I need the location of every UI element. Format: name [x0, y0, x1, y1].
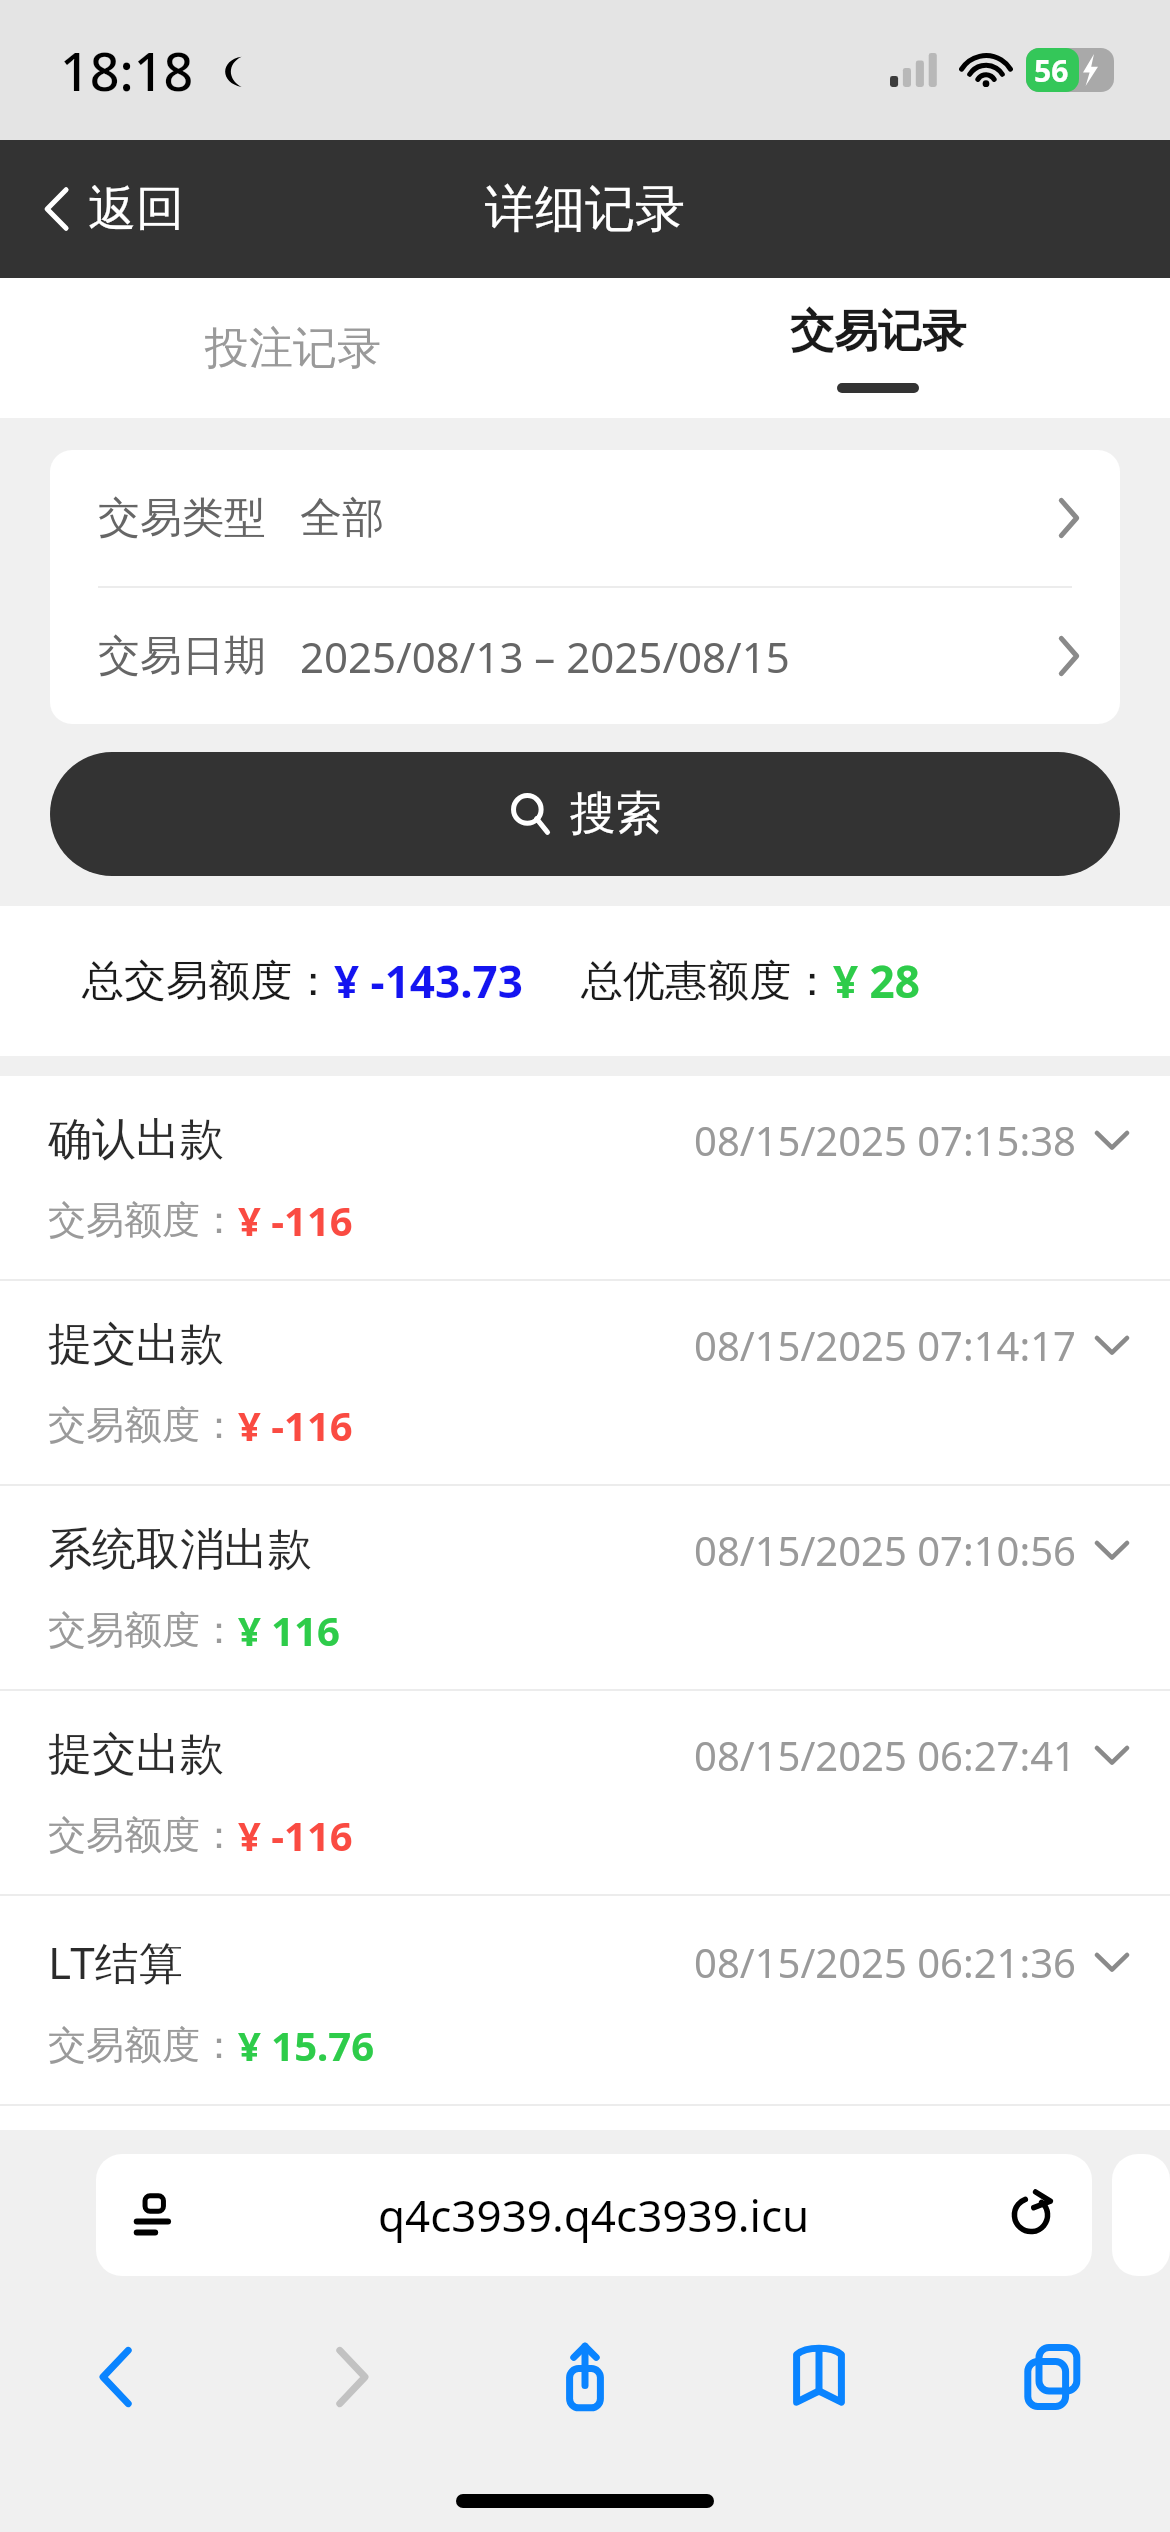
staticText: q4c3939.q4c3939.icu — [378, 2185, 810, 2245]
staticText: 08/15/2025 07:14:17 — [694, 1318, 1076, 1372]
button[interactable]: 系统取消出款 — [0, 1486, 1170, 1691]
button[interactable]: Back — [0, 2322, 234, 2432]
staticText: 2025/08/13 – 2025/08/15 — [300, 628, 790, 685]
staticText: ¥ -116 — [238, 1808, 353, 1862]
button[interactable]: 交易类型 — [50, 450, 1120, 586]
button[interactable]: Forward — [234, 2322, 468, 2432]
button[interactable]: 交易日期 — [50, 588, 1120, 724]
staticText: 返回 — [88, 179, 184, 239]
button[interactable]: Page settings — [96, 2154, 1092, 2276]
button[interactable]: Share — [468, 2322, 702, 2432]
staticText: 交易额度： — [48, 1196, 238, 1244]
staticText: ¥ 116 — [238, 1603, 340, 1657]
staticText: ¥ -116 — [238, 1193, 353, 1247]
button[interactable]: Tabs — [936, 2322, 1170, 2432]
other: Page settings — [134, 2192, 180, 2238]
staticText: 08/15/2025 07:10:56 — [694, 1523, 1076, 1577]
staticText: 提交出款 — [48, 1317, 224, 1372]
staticText: 详细记录 — [485, 178, 685, 241]
staticText: 交易额度： — [48, 1811, 238, 1859]
staticText: 搜索 — [570, 785, 662, 843]
button[interactable]: 提交出款 — [0, 1281, 1170, 1486]
button[interactable]: 投注记录 — [0, 278, 585, 418]
staticText: 交易记录 — [790, 304, 966, 359]
button[interactable]: 提交出款 — [0, 1691, 1170, 1896]
staticText: LT结算 — [48, 1932, 183, 1992]
staticText: 总交易额度： — [82, 955, 334, 1008]
staticText: 确认出款 — [48, 1112, 224, 1167]
staticText: 交易类型 — [98, 492, 266, 545]
staticText: ¥ -143.73 — [334, 951, 523, 1011]
staticText: 08/15/2025 07:15:38 — [694, 1113, 1076, 1167]
staticText: ¥ -116 — [238, 1398, 353, 1452]
staticText: ¥ 15.76 — [238, 2018, 375, 2072]
button[interactable]: 交易记录 — [585, 278, 1170, 418]
staticText: 投注记录 — [205, 321, 381, 376]
button[interactable]: LT结算 — [0, 1896, 1170, 2106]
button[interactable]: 返回 — [0, 159, 214, 259]
button[interactable]: 确认出款 — [0, 1076, 1170, 1281]
other: Reload — [1008, 2192, 1054, 2238]
staticText: 交易额度： — [48, 1401, 238, 1449]
staticText: 08/15/2025 06:27:41 — [694, 1728, 1076, 1782]
staticText: 交易额度： — [48, 2021, 238, 2069]
staticText: 08/15/2025 06:21:36 — [694, 1935, 1076, 1989]
button[interactable]: 搜索 — [50, 752, 1120, 876]
staticText: 交易额度： — [48, 1606, 238, 1654]
staticText: 全部 — [300, 492, 384, 545]
staticText: 系统取消出款 — [48, 1522, 312, 1577]
staticText: 56 — [1034, 50, 1069, 91]
staticText: 提交出款 — [48, 1727, 224, 1782]
button[interactable]: Bookmarks — [702, 2322, 936, 2432]
staticText: ¥ 28 — [833, 951, 920, 1011]
staticText: 18:18 — [60, 35, 194, 106]
staticText: 交易日期 — [98, 630, 266, 683]
staticText: 总优惠额度： — [581, 955, 833, 1008]
